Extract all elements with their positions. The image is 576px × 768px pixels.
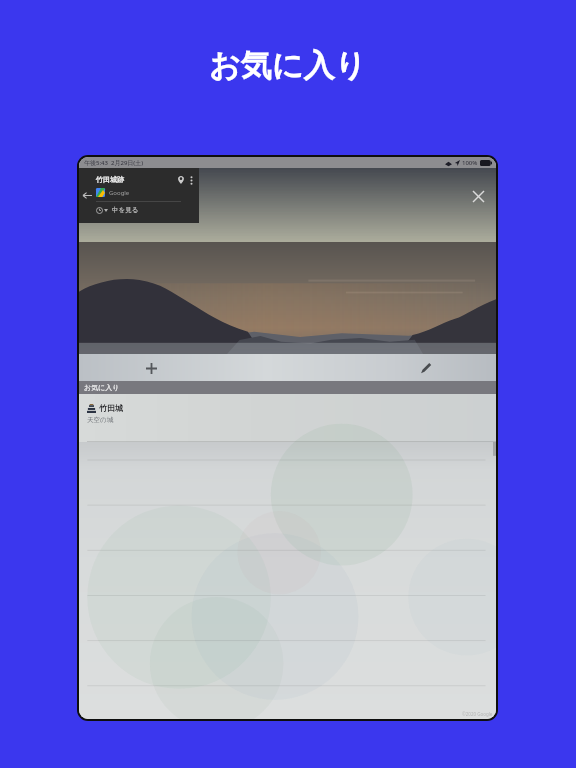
staticText: ©2020 Google xyxy=(462,711,493,717)
button[interactable]: 地図 xyxy=(175,174,186,185)
staticText: お気に入り xyxy=(209,46,367,85)
staticText: 天空の城 xyxy=(87,416,114,424)
staticText: 午後5:43 2月29日(土) xyxy=(84,159,144,167)
button[interactable]: その他 xyxy=(186,175,196,185)
staticText: 竹田城 xyxy=(99,403,123,413)
staticText: 竹田城跡 xyxy=(96,175,124,184)
button[interactable]: 閉じる xyxy=(466,184,490,208)
staticText: 100% xyxy=(462,159,478,167)
button[interactable]: 竹田城 xyxy=(79,394,496,442)
staticText: 中を見る xyxy=(112,206,139,214)
button[interactable]: 戻る xyxy=(79,168,96,223)
staticText: お気に入り xyxy=(84,383,120,392)
staticText: Google xyxy=(109,189,130,197)
button[interactable]: 追加 xyxy=(139,356,163,380)
button[interactable]: 中を見る xyxy=(96,206,139,214)
button[interactable]: 編集 xyxy=(413,356,437,380)
